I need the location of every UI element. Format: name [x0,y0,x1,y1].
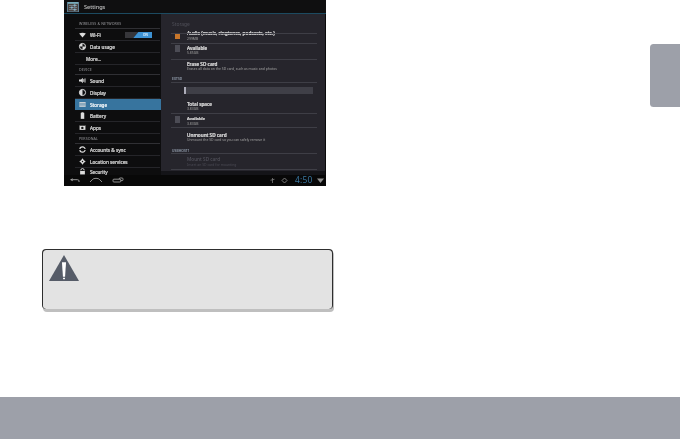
staticText: Available [187,116,206,122]
staticText: Sound [90,78,105,84]
button[interactable] [161,33,324,43]
staticText: 3.83GB [187,106,199,111]
button[interactable]: ON [125,32,152,38]
staticText: Security [90,169,108,175]
button[interactable]: Battery [64,110,161,121]
staticText: Accounts & sync [90,147,126,153]
staticText: EXTSD [172,76,183,80]
button[interactable]: Back [70,178,79,182]
staticText: Insert an SD card for mounting [187,162,237,167]
staticText: 3.83GB [187,121,199,126]
staticText: Location services [90,159,128,165]
button[interactable] [161,43,324,59]
staticText: Available [187,45,208,51]
staticText: Display [90,90,106,96]
button[interactable]: Display [64,87,161,98]
button[interactable]: Wi-Fi [64,29,161,40]
staticText: Erases all data on the SD card, such as … [187,66,277,71]
staticText: PERSONAL [79,136,98,141]
staticText: Erase SD card [187,61,218,67]
staticText: Mount SD card [187,156,221,162]
staticText: Total space [187,101,212,107]
button[interactable]: Sound [64,75,161,86]
staticText: Wi-Fi [90,32,101,38]
staticText: Unmount SD card [187,132,227,138]
staticText: WIRELESS & NETWORKS [79,21,122,26]
staticText: Data usage [90,44,115,50]
staticText: 5.85GB [187,50,199,55]
button[interactable] [161,113,324,128]
button[interactable]: Accounts & sync [64,144,161,155]
button[interactable] [161,127,324,152]
staticText: DEVICE [79,67,92,72]
button[interactable] [161,99,324,113]
staticText: Audio (music, ringtones, podcasts, etc.) [187,30,275,36]
button[interactable]: Data usage [64,41,161,52]
button[interactable]: Security [64,168,161,175]
staticText: Unmount the SD card so you can safely re… [187,137,266,142]
button[interactable] [161,153,324,171]
button[interactable]: More... [64,53,161,64]
staticText: 4:50 [295,174,313,185]
staticText: Apps [90,125,102,131]
button[interactable]: Apps [64,122,161,133]
staticText: Settings [84,3,106,11]
button[interactable]: Recent apps [113,178,123,182]
staticText: ON [143,33,148,37]
staticText: USBHOST1 [172,148,190,152]
button[interactable]: Home [90,178,102,182]
staticText: Storage [172,21,190,28]
button[interactable] [161,59,324,82]
staticText: More... [86,56,102,62]
staticText: 299MB [187,36,199,41]
button[interactable]: Location services [64,156,161,167]
staticText: Storage [90,102,108,108]
button[interactable]: Storage [75,99,161,110]
staticText: Battery [90,113,107,119]
